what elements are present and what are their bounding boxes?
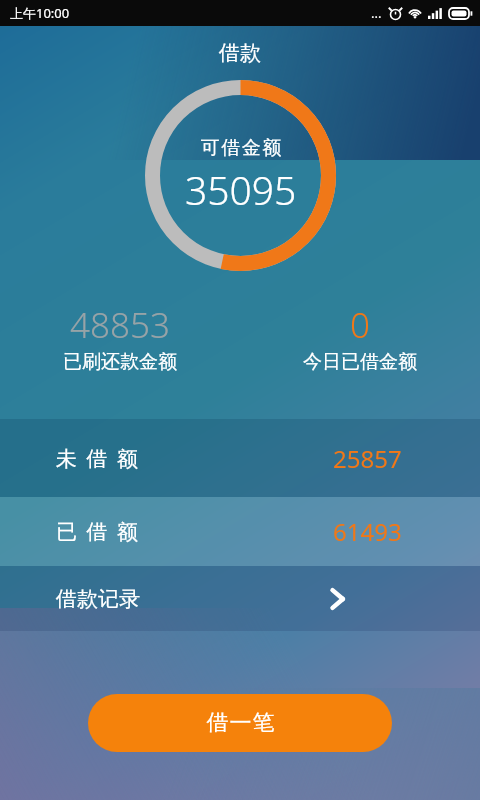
staticText: 已刷还款金额 <box>63 350 177 374</box>
staticText: 借款 <box>219 40 261 66</box>
staticText: 今日已借金额 <box>303 350 417 374</box>
staticText: 未 借 额 <box>56 444 140 473</box>
button[interactable]: 已 借 额 <box>0 497 480 566</box>
staticText: 0 <box>350 301 370 349</box>
staticText: 借款记录 <box>56 586 140 612</box>
staticText: 已 借 额 <box>56 517 140 546</box>
button[interactable]: 借款记录 <box>0 566 480 631</box>
other: 借款记录 <box>326 586 352 612</box>
button[interactable]: 借一笔 <box>88 694 392 752</box>
staticText: 上午10:00 <box>10 4 70 22</box>
staticText: 61493 <box>333 515 402 548</box>
staticText: 借一笔 <box>206 709 275 737</box>
staticText: 48853 <box>70 301 170 349</box>
staticText: ... <box>371 4 382 22</box>
staticText: 可借金额 <box>200 136 282 160</box>
staticText: 35095 <box>185 163 297 216</box>
staticText: 25857 <box>333 442 402 475</box>
button[interactable]: 未 借 额 <box>0 419 480 497</box>
